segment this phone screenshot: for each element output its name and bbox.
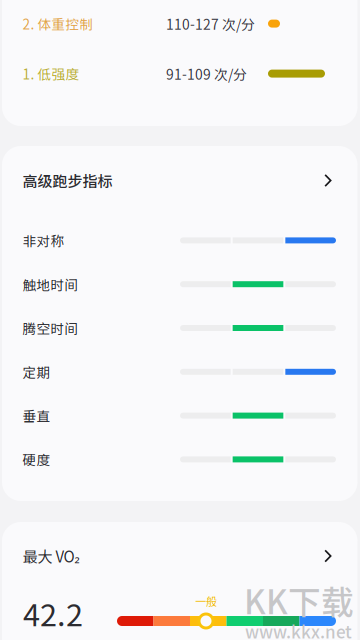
button[interactable]: 高级跑步指标: [22, 163, 331, 197]
staticText: 一般: [195, 593, 217, 609]
button[interactable]: 最大 VO₂: [22, 539, 331, 573]
staticText: 2. 体重控制: [22, 14, 93, 33]
staticText: 定期: [22, 362, 50, 382]
staticText: 最大 VO₂: [22, 545, 79, 567]
staticText: 42.2: [23, 591, 83, 635]
staticText: 1. 低强度: [22, 64, 79, 83]
staticText: 110-127 次/分: [166, 14, 255, 34]
staticText: KK下载: [244, 576, 354, 624]
staticText: 腾空时间: [22, 318, 78, 338]
staticText: www.kkx.net: [245, 619, 352, 640]
staticText: 非对称: [22, 231, 64, 250]
staticText: 触地时间: [22, 274, 78, 294]
staticText: 高级跑步指标: [22, 170, 112, 191]
staticText: 硬度: [22, 450, 50, 469]
staticText: 91-109 次/分: [166, 64, 247, 84]
staticText: 垂直: [22, 406, 50, 425]
